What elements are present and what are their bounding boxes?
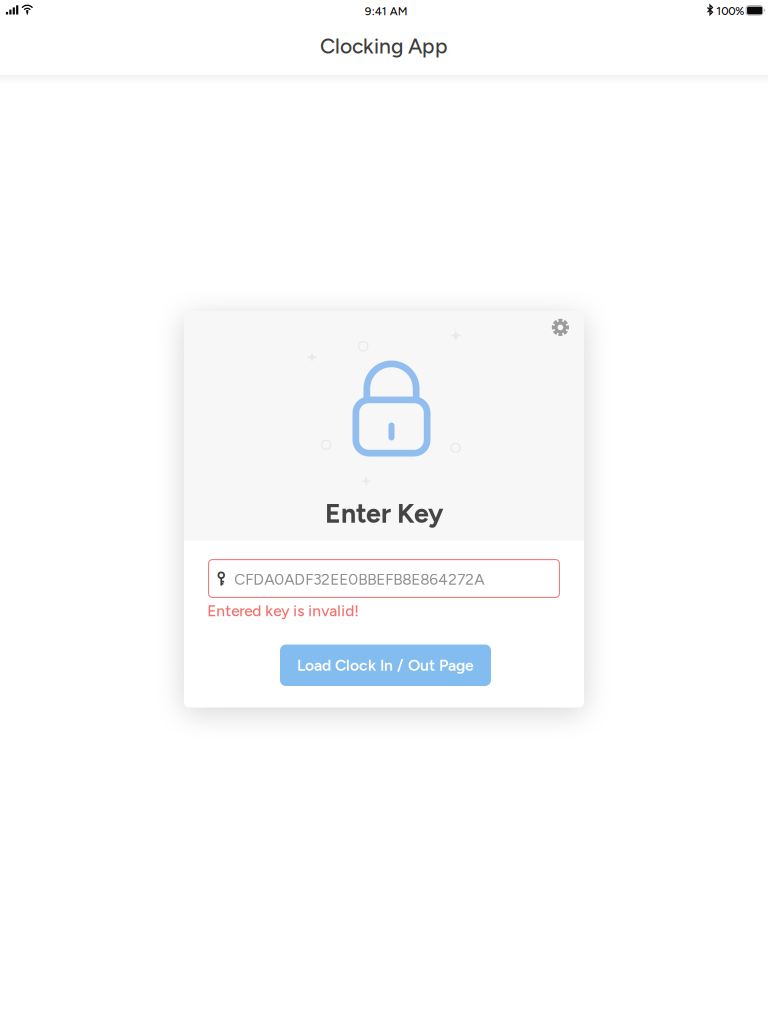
staticText: Enter Key: [325, 497, 443, 529]
button[interactable]: CFDA0ADF32EE0BBEFB8E864272A: [208, 559, 560, 598]
staticText: 100%: [716, 4, 744, 18]
staticText: CFDA0ADF32EE0BBEFB8E864272A: [234, 570, 484, 589]
staticText: 9:41 AM: [365, 4, 408, 18]
staticText: Clocking App: [320, 33, 448, 59]
button[interactable]: Settings: [541, 308, 580, 347]
staticText: Load Clock In / Out Page: [297, 656, 474, 675]
button[interactable]: Load Clock In / Out Page: [280, 644, 491, 686]
staticText: Entered key is invalid!: [207, 601, 359, 620]
